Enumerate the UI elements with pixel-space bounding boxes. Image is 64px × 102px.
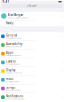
staticText: Focus: [6, 77, 13, 81]
staticText: Apple Account, iCloud, and more: [8, 17, 29, 19]
staticText: ›: [62, 87, 63, 90]
button[interactable]: Accessibility: [0, 41, 64, 49]
staticText: 9:41: [2, 0, 9, 3]
button[interactable]: Storage: [0, 84, 64, 93]
staticText: Default Apps, App Store: [6, 55, 21, 56]
staticText: ›: [62, 52, 63, 55]
staticText: Camera: [6, 60, 15, 63]
staticText: Do Not Disturb, Sleep: [6, 81, 19, 82]
staticText: Storage: [6, 86, 16, 89]
button[interactable]: Focus: [0, 76, 64, 84]
staticText: General: [6, 34, 17, 37]
staticText: ›: [62, 69, 63, 73]
staticText: ›: [62, 95, 63, 99]
staticText: Search: [29, 4, 37, 8]
staticText: ›: [62, 34, 63, 38]
button[interactable]: Camera: [0, 58, 64, 67]
staticText: Display: [6, 68, 15, 72]
button[interactable]: Alex Morgan: [0, 12, 64, 20]
staticText: Accessibility: [6, 42, 22, 46]
staticText: Family: [6, 21, 13, 25]
staticText: About, Software Update: [6, 37, 21, 39]
staticText: Alex Morgan: [8, 13, 24, 17]
staticText: Display, Touch, Hearing: [6, 46, 22, 48]
button[interactable]: General: [0, 32, 64, 40]
button[interactable]: Family: [0, 20, 64, 26]
staticText: Brightness, True Tone: [6, 72, 22, 74]
staticText: ›: [62, 14, 63, 18]
staticText: Apps: [6, 51, 13, 54]
staticText: ›: [62, 78, 63, 81]
button[interactable]: Notifications: [0, 93, 64, 101]
staticText: Formats, Grid, Modes: [6, 63, 20, 65]
staticText: Banners, Sounds, Badges: [6, 98, 25, 100]
staticText: ›: [62, 43, 63, 47]
staticText: ›: [62, 61, 63, 64]
staticText: ›: [62, 21, 63, 25]
staticText: iPhone Storage, iCloud: [6, 89, 21, 91]
staticText: Notifications: [6, 94, 23, 98]
button[interactable]: Apps: [0, 49, 64, 58]
button[interactable]: Display: [0, 67, 64, 75]
